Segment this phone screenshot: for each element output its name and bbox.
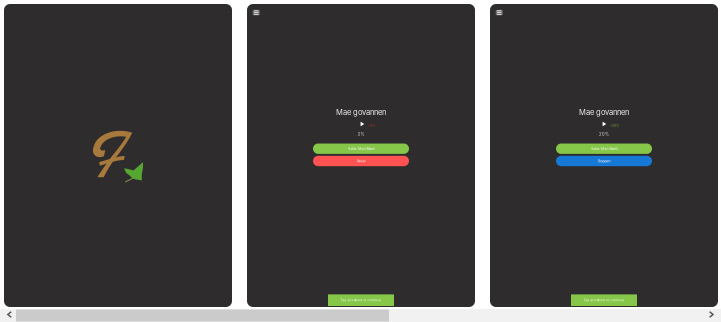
button[interactable]: Stoppen	[556, 156, 652, 166]
button[interactable]: Halte (Visit Mart)	[556, 143, 652, 154]
staticText: Tap anywhere to continue	[340, 298, 381, 302]
staticText: Mae govannen	[579, 108, 629, 117]
staticText: Tap anywhere to continue	[583, 298, 624, 302]
staticText: 20%	[599, 132, 609, 137]
staticText: Mae govannen	[336, 108, 386, 117]
button[interactable]: Scroll right	[705, 309, 721, 322]
staticText: 0%	[357, 132, 364, 137]
staticText: Halte (Visit Mart)	[347, 147, 374, 151]
button[interactable]: Menu	[496, 10, 503, 15]
button[interactable]: Reset	[313, 156, 409, 166]
button[interactable]: Tap anywhere to continue	[571, 294, 637, 306]
button[interactable]: Menu	[253, 10, 260, 15]
staticText: -0%	[368, 123, 376, 128]
staticText: Reset	[356, 159, 365, 163]
staticText: +20%	[610, 123, 620, 128]
staticText: Stoppen	[597, 159, 610, 163]
button[interactable]: Scroll left	[0, 309, 16, 322]
button[interactable]: Tap anywhere to continue	[328, 294, 394, 306]
staticText: Halte (Visit Mart)	[590, 147, 617, 151]
button[interactable]: Halte (Visit Mart)	[313, 143, 409, 154]
